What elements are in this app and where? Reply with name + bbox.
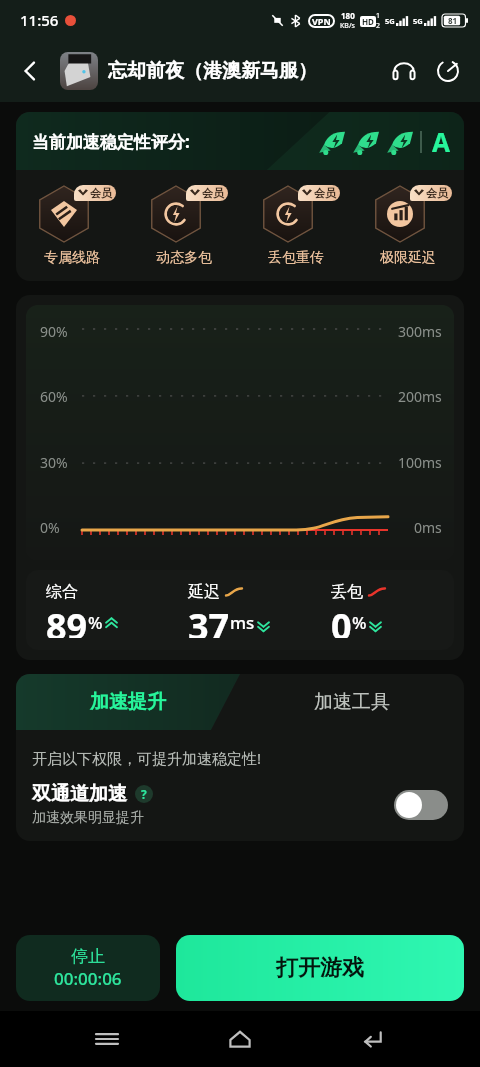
button[interactable]: 加速提升 [16,674,240,730]
staticText: 100ms [398,453,442,472]
button[interactable]: 会员 [240,182,352,267]
staticText: 丢包 [331,582,363,602]
button[interactable]: Headset [382,49,426,93]
staticText: 0ms [414,518,442,537]
staticText: 会员 [314,186,336,200]
staticText: 忘却前夜（港澳新马服） [108,59,317,83]
staticText: 60% [40,387,68,406]
staticText: 开启以下权限，可提升加速稳定性! [32,748,262,768]
button[interactable]: Refresh [426,49,470,93]
staticText: 89 [46,602,88,638]
staticText: 会员 [90,186,112,200]
button[interactable]: 停止 [16,935,160,1001]
button[interactable]: 会员 [128,182,240,267]
staticText: KB/s [340,21,355,31]
staticText: ? [141,786,147,802]
staticText: 0% [40,518,60,537]
staticText: 极限延迟 [380,249,436,267]
button[interactable]: Home [214,1013,266,1065]
staticText: 延迟 [188,582,220,602]
staticText: 加速效果明显提升 [32,809,144,827]
staticText: 丢包重传 [268,249,324,267]
staticText: ms [230,611,255,634]
staticText: % [88,611,103,634]
staticText: 1 [376,11,381,21]
staticText: 81 [448,15,458,26]
staticText: 90% [40,322,68,341]
staticText: 180 [341,10,355,21]
staticText: 会员 [202,186,224,200]
staticText: 停止 [71,946,105,967]
staticText: 加速工具 [314,690,390,714]
button[interactable]: 双通道加速 [16,768,464,841]
button[interactable]: Back [347,1013,399,1065]
staticText: 200ms [398,387,442,406]
button[interactable]: Toggle dual channel acceleration [394,790,448,820]
staticText: 300ms [398,322,442,341]
staticText: 打开游戏 [276,954,364,982]
button[interactable]: 会员 [352,182,464,267]
staticText: 00:00:06 [54,967,122,990]
staticText: 2 [376,21,381,31]
staticText: 双通道加速 [32,782,127,806]
staticText: % [352,611,367,634]
staticText: 30% [40,453,68,472]
button[interactable]: Recent apps [81,1013,133,1065]
staticText: 动态多包 [156,249,212,267]
staticText: VPN [312,15,331,27]
staticText: 11:56 [20,10,59,30]
staticText: A [432,124,450,159]
staticText: 5G [385,16,395,26]
staticText: 综合 [46,582,78,602]
button[interactable]: 会员 [16,182,128,267]
staticText: 加速提升 [90,690,166,714]
staticText: 当前加速稳定性评分: [32,130,190,153]
staticText: 0 [331,602,352,638]
button[interactable]: 加速工具 [240,674,464,730]
staticText: 5G [413,16,423,26]
staticText: HD [362,16,374,27]
button[interactable]: 打开游戏 [176,935,464,1001]
staticText: 37 [188,602,230,638]
button[interactable]: Back [8,49,52,93]
staticText: 专属线路 [44,249,100,267]
staticText: 会员 [426,186,448,200]
